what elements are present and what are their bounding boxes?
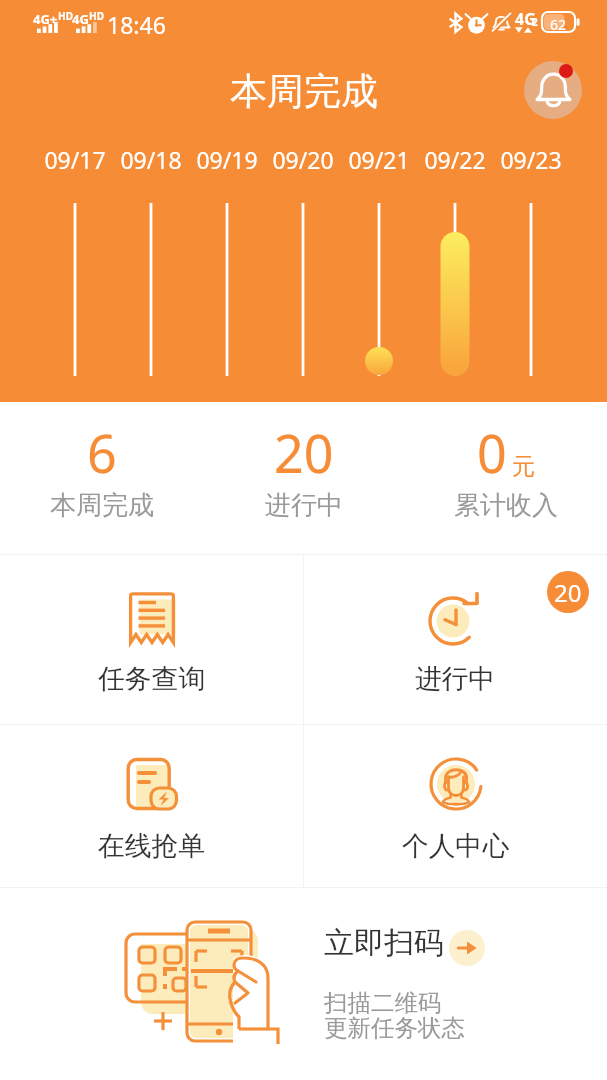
staticText: 09/18 — [113, 144, 189, 175]
staticText: 09/23 — [493, 144, 569, 175]
staticText: 09/22 — [417, 144, 493, 175]
staticText: 09/17 — [37, 144, 113, 175]
staticText: 4G — [515, 8, 536, 30]
staticText: 20 — [554, 576, 582, 609]
staticText: 元 — [512, 452, 535, 481]
button[interactable]: 在线抢单 — [0, 725, 303, 887]
staticText: 累计收入 — [454, 489, 558, 522]
staticText: 09/21 — [341, 144, 417, 175]
button[interactable]: Notifications — [524, 61, 582, 119]
staticText: 立即扫码 — [324, 924, 444, 962]
staticText: 09/19 — [189, 144, 265, 175]
button[interactable]: 个人中心 — [304, 725, 607, 887]
staticText: 更新任务状态 — [324, 1013, 465, 1043]
staticText: 扫描二维码 — [324, 988, 442, 1018]
staticText: 本周完成 — [50, 489, 154, 522]
staticText: 进行中 — [265, 489, 343, 522]
button[interactable]: 任务查询 — [0, 555, 303, 724]
staticText: 在线抢单 — [98, 829, 206, 863]
staticText: 20 — [274, 417, 334, 488]
staticText: HD — [89, 9, 104, 23]
staticText: 任务查询 — [98, 662, 206, 696]
staticText: 6 — [87, 417, 117, 488]
staticText: 09/20 — [265, 144, 341, 175]
staticText: 2 — [532, 15, 538, 29]
staticText: 个人中心 — [402, 829, 510, 863]
button[interactable]: 进行中 — [304, 555, 607, 724]
staticText: 18:46 — [107, 9, 166, 40]
staticText: 进行中 — [415, 662, 496, 696]
staticText: 本周完成 — [230, 68, 378, 115]
staticText: 4G — [72, 10, 89, 28]
staticText: 62 — [550, 15, 567, 34]
staticText: 4G+ — [33, 10, 58, 28]
button[interactable]: Scan now — [449, 930, 485, 966]
staticText: 0 — [477, 417, 507, 488]
staticText: HD — [58, 9, 73, 23]
button[interactable]: 立即扫码 — [0, 888, 607, 1080]
